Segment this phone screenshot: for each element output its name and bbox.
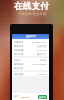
staticText: 138****8888 bbox=[32, 63, 47, 66]
button[interactable]: 订单金额 bbox=[12, 48, 49, 52]
button[interactable]: 商品名称 bbox=[12, 44, 49, 48]
staticText: ¥ 198.00 bbox=[37, 49, 47, 52]
button[interactable]: 实付金额 bbox=[12, 72, 49, 76]
button[interactable]: 付款人 bbox=[12, 58, 49, 62]
staticText: 商品名称 bbox=[14, 45, 24, 48]
staticText: 去支付 bbox=[39, 96, 46, 99]
staticText: 联系电话 bbox=[14, 63, 24, 66]
staticText: 支付方式 bbox=[14, 53, 24, 56]
staticText: 实付金额 bbox=[14, 73, 24, 76]
button[interactable]: 在线支付 bbox=[12, 34, 49, 39]
staticText: 订单编号 bbox=[14, 41, 24, 44]
staticText: 张先生 bbox=[40, 59, 47, 62]
staticText: 备注信息 bbox=[14, 67, 24, 70]
staticText: 会员充值 bbox=[37, 45, 47, 48]
staticText: 在线支付 bbox=[14, 1, 50, 12]
staticText: ¥198.00 bbox=[20, 95, 30, 98]
button[interactable]: 备注信息 bbox=[12, 66, 49, 70]
staticText: 方便快捷 安全可靠 bbox=[18, 12, 47, 16]
button[interactable]: 去支付 bbox=[38, 95, 47, 99]
staticText: 微信支付 bbox=[37, 53, 47, 56]
button[interactable]: 支付方式 bbox=[12, 52, 49, 56]
staticText: 付款人 bbox=[14, 59, 21, 62]
staticText: ¥ 198.00 bbox=[37, 73, 47, 76]
button[interactable]: 联系电话 bbox=[12, 62, 49, 66]
button[interactable]: 订单编号 bbox=[12, 40, 49, 44]
staticText: 20180512001 bbox=[32, 41, 47, 44]
staticText: 合计 bbox=[14, 95, 19, 98]
staticText: 在线支付 bbox=[26, 35, 36, 38]
staticText: 订单金额 bbox=[14, 49, 24, 52]
